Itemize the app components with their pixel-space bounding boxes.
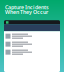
staticText: Capture Incidents (5, 4, 49, 11)
staticText: When They Occur (5, 8, 48, 15)
